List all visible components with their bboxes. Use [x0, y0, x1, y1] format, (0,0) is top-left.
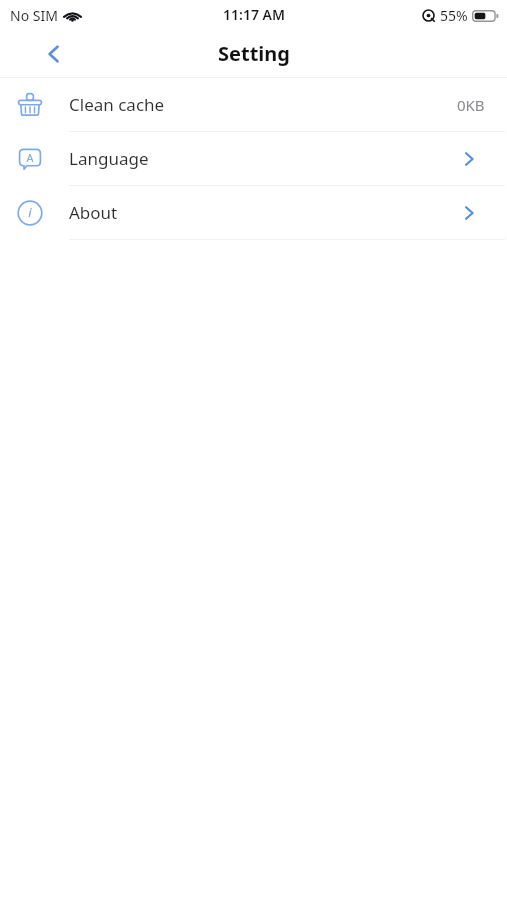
staticText: No SIM	[10, 6, 58, 25]
staticText: A	[26, 150, 34, 165]
button[interactable]: Clean cache	[0, 78, 507, 131]
staticText: Setting	[218, 40, 290, 67]
staticText: i	[28, 203, 32, 221]
staticText: Clean cache	[69, 93, 165, 116]
staticText: 0KB	[457, 95, 485, 115]
button[interactable]: Back	[32, 32, 76, 76]
button[interactable]: i	[0, 186, 507, 239]
staticText: About	[69, 201, 118, 224]
button[interactable]: A	[0, 132, 507, 185]
staticText: 11:17 AM	[223, 5, 285, 24]
staticText: 55%	[440, 6, 468, 25]
staticText: Language	[69, 147, 149, 170]
